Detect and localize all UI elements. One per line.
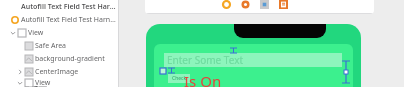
button[interactable]: Snippets bbox=[278, 0, 289, 10]
staticText: Safe Area bbox=[35, 41, 67, 51]
staticText: Check bbox=[172, 75, 187, 82]
button[interactable]: Library bbox=[259, 0, 270, 10]
button[interactable]: Media bbox=[240, 0, 251, 10]
staticText: View bbox=[35, 78, 51, 87]
staticText: Autofill Text Field Test Harness… bbox=[21, 15, 119, 25]
staticText: CenterImage bbox=[35, 67, 79, 77]
button[interactable]: Object bbox=[221, 0, 232, 10]
button[interactable]: Safe Area bbox=[0, 39, 119, 52]
button[interactable]: Enter Some Text bbox=[164, 53, 342, 67]
staticText: Autofill Text Field Test Harness Vi… bbox=[21, 2, 119, 12]
staticText: background-gradient bbox=[35, 54, 105, 64]
staticText: Is On bbox=[184, 71, 222, 87]
button[interactable]: Check bbox=[168, 74, 190, 83]
button[interactable]: View bbox=[0, 26, 119, 39]
button[interactable]: View bbox=[0, 78, 119, 87]
staticText: Enter Some Text bbox=[167, 53, 244, 67]
button[interactable]: Autofill Text Field Test Harness… bbox=[0, 13, 119, 26]
staticText: View bbox=[28, 28, 44, 38]
button[interactable]: CenterImage bbox=[0, 65, 119, 78]
button[interactable]: background-gradient bbox=[0, 52, 119, 65]
button[interactable]: Autofill Text Field Test Harness Vi… bbox=[0, 0, 119, 13]
